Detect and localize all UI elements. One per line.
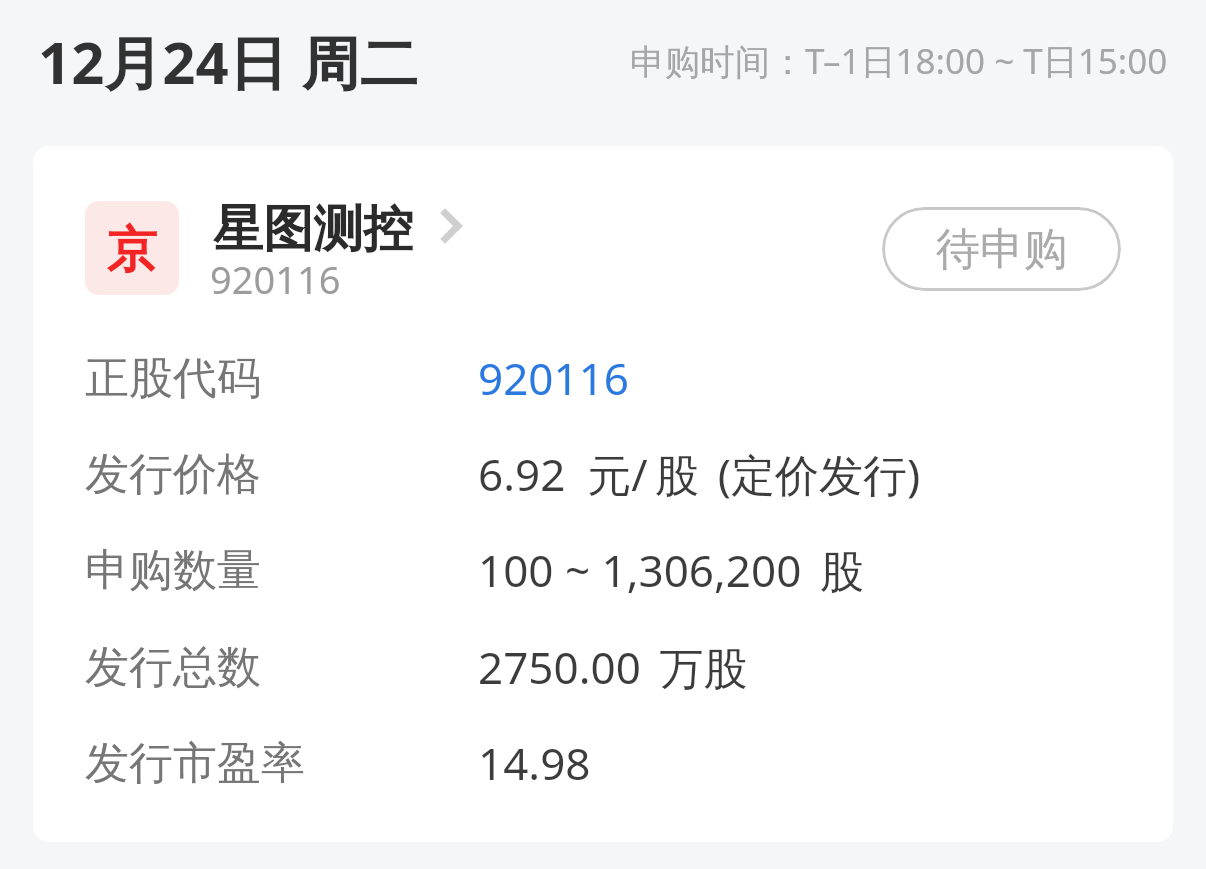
staticText: 12月24日 周二 — [38, 22, 418, 101]
button[interactable]: 发行价格 — [85, 426, 1121, 522]
button[interactable]: 发行总数 — [85, 619, 1121, 715]
staticText: 100 ~ 1,306,200 股 — [478, 540, 865, 600]
staticText: 正股代码 — [85, 351, 261, 406]
button[interactable]: 京 — [33, 146, 1173, 842]
staticText: 星图测控 — [213, 198, 413, 261]
staticText: 待申购 — [936, 222, 1068, 277]
other: 查看详情 — [442, 210, 461, 242]
button[interactable]: 发行市盈率 — [85, 715, 1121, 811]
button[interactable]: 星图测控 — [213, 198, 461, 313]
staticText: 920116 — [210, 253, 341, 305]
button[interactable]: 正股代码 — [85, 330, 1121, 426]
staticText: 京 — [107, 219, 157, 282]
staticText: 2750.00 万股 — [478, 637, 748, 697]
staticText: 14.98 — [478, 733, 591, 793]
staticText: 6.92 元/ 股 (定价发行) — [478, 444, 921, 504]
staticText: 发行价格 — [85, 447, 261, 502]
staticText: 申购时间：T–1日18:00 ~ T日15:00 — [630, 37, 1168, 85]
staticText: 920116 — [478, 348, 630, 408]
staticText: 发行市盈率 — [85, 736, 305, 791]
staticText: 发行总数 — [85, 640, 261, 695]
button[interactable]: 申购数量 — [85, 522, 1121, 618]
staticText: 申购数量 — [85, 543, 261, 598]
button[interactable]: 待申购 — [882, 207, 1121, 291]
